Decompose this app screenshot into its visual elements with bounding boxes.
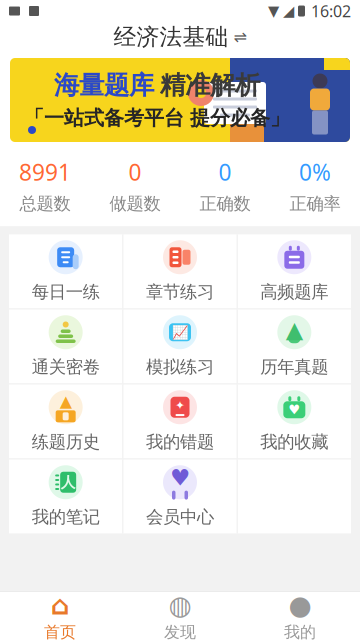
staticText: ⇌	[233, 28, 246, 46]
staticText: ▼	[268, 3, 279, 19]
button[interactable]: 📈	[123, 309, 237, 383]
button[interactable]: ✦	[123, 384, 237, 458]
staticText: ▲	[60, 392, 72, 410]
staticText: 精准解析	[160, 70, 260, 101]
staticText: 0	[218, 157, 231, 187]
staticText: 8991	[19, 157, 71, 187]
staticText: ♥	[170, 465, 190, 491]
staticText: 16:02	[311, 0, 351, 22]
staticText: ◢	[283, 3, 294, 19]
staticText: 我的错题	[146, 431, 214, 452]
button[interactable]: ▲	[9, 384, 122, 458]
button[interactable]: 经济法基础	[103, 19, 256, 55]
staticText: 正确率	[289, 193, 340, 214]
staticText: 做题数	[109, 193, 160, 214]
staticText: 0%	[299, 157, 331, 187]
button[interactable]: 章节练习	[123, 234, 237, 308]
staticText: 历年真题	[260, 356, 328, 377]
staticText: 0	[128, 157, 141, 187]
staticText: ♥	[288, 402, 300, 417]
staticText: 练题历史	[32, 431, 100, 452]
staticText: 正确数	[199, 193, 250, 214]
staticText: ◍	[168, 590, 191, 620]
button[interactable]: ♥	[123, 459, 237, 533]
staticText: 会员中心	[146, 506, 214, 527]
staticText: 📈	[171, 325, 188, 340]
staticText: 我的笔记	[32, 506, 100, 527]
button[interactable]: 每日一练	[9, 234, 122, 308]
staticText: 人	[61, 473, 76, 491]
button[interactable]: 海量题库	[10, 58, 350, 142]
staticText: 海量题库	[54, 70, 154, 101]
button[interactable]: 高频题库	[238, 234, 351, 308]
staticText: 经济法基础	[113, 23, 228, 51]
staticText: ●	[288, 590, 311, 620]
button[interactable]: ♥	[238, 384, 351, 458]
staticText: 高频题库	[260, 281, 328, 302]
staticText: ✦	[175, 398, 185, 412]
staticText: 每日一练	[32, 281, 100, 302]
staticText: 我的	[284, 622, 316, 640]
button[interactable]: 人	[9, 459, 122, 533]
staticText: ⌂	[50, 590, 69, 620]
button[interactable]: 通关密卷	[9, 309, 122, 383]
button[interactable]: ◍	[120, 592, 240, 640]
staticText: 总题数	[19, 193, 70, 214]
staticText: 我的收藏	[260, 431, 328, 452]
button[interactable]: ▲	[238, 309, 351, 383]
staticText: ▲	[286, 317, 303, 343]
staticText: 章节练习	[146, 281, 214, 302]
staticText: 发现	[164, 622, 196, 640]
staticText: 首页	[44, 622, 76, 640]
button[interactable]: ⌂	[0, 592, 120, 640]
staticText: 通关密卷	[32, 356, 100, 377]
staticText: 模拟练习	[146, 356, 214, 377]
button[interactable]: ●	[240, 592, 360, 640]
staticText: 「一站式备考平台 提分必备」	[24, 106, 290, 130]
